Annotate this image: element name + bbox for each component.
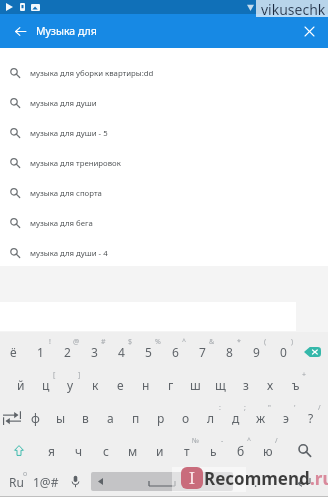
button[interactable]: т — [173, 434, 200, 467]
button[interactable]: музыка для бега — [0, 208, 328, 238]
button[interactable]: ф — [23, 401, 48, 434]
button[interactable]: музыка для уборки квартиры:dd — [0, 58, 328, 88]
button[interactable]: . — [233, 467, 279, 496]
staticText: I — [189, 467, 195, 489]
button[interactable]: и — [146, 434, 173, 467]
staticText: ж — [256, 410, 266, 426]
button[interactable]: е — [108, 368, 133, 401]
staticText: ё — [10, 344, 17, 360]
staticText: № — [192, 436, 200, 446]
button[interactable]: р — [148, 401, 173, 434]
button[interactable]: ъ — [283, 368, 308, 401]
button[interactable]: ? — [298, 401, 323, 434]
button[interactable]: с — [92, 434, 119, 467]
staticText: 0 — [280, 344, 287, 360]
button[interactable]: Enter — [279, 467, 328, 496]
button[interactable]: у — [58, 368, 83, 401]
staticText: vikusechk — [261, 0, 326, 17]
button[interactable]: э — [273, 401, 298, 434]
button[interactable]: Shift — [0, 434, 38, 467]
button[interactable]: я — [38, 434, 65, 467]
button[interactable]: Search — [281, 434, 328, 467]
staticText: Recommend — [204, 467, 310, 489]
button[interactable]: ь — [200, 434, 227, 467]
button[interactable]: музыка для души - 5 — [0, 118, 328, 148]
staticText: ? — [308, 410, 314, 426]
button[interactable]: й — [8, 368, 33, 401]
staticText: музыка для души - 4 — [30, 248, 108, 259]
button[interactable]: н — [133, 368, 158, 401]
staticText: 7 — [199, 344, 206, 360]
button[interactable]: щ — [208, 368, 233, 401]
staticText: музыка для бега — [30, 218, 93, 229]
button[interactable]: д — [223, 401, 248, 434]
button[interactable]: ё — [0, 335, 27, 368]
button[interactable]: Tab — [0, 401, 23, 434]
staticText: Музыка для — [36, 24, 97, 38]
staticText: з — [243, 377, 249, 393]
button[interactable]: Space — [91, 472, 233, 491]
button[interactable]: 1@# — [32, 467, 59, 496]
staticText: ю — [263, 443, 273, 459]
staticText: .ru — [310, 467, 328, 489]
button[interactable]: Voice input — [59, 467, 91, 496]
button[interactable]: ш — [183, 368, 208, 401]
button[interactable]: ц — [33, 368, 58, 401]
button[interactable]: ч — [65, 434, 92, 467]
button[interactable]: музыка для спорта — [0, 178, 328, 208]
staticText: ц — [42, 377, 50, 393]
staticText: 1@# — [33, 474, 59, 490]
button[interactable]: музыка для души — [0, 88, 328, 118]
button[interactable]: музыка для тренировок — [0, 148, 328, 178]
button[interactable]: 1 — [27, 335, 54, 368]
staticText: ь — [210, 443, 217, 459]
staticText: е — [117, 377, 124, 393]
staticText: музыка для тренировок — [30, 158, 121, 169]
staticText: + — [302, 370, 307, 380]
button[interactable]: ю — [254, 434, 281, 467]
staticText: н — [142, 377, 150, 393]
staticText: ^ — [247, 436, 252, 446]
button[interactable]: г — [158, 368, 183, 401]
button[interactable]: м — [119, 434, 146, 467]
staticText: музыка для спорта — [30, 188, 102, 199]
button[interactable]: б — [227, 434, 254, 467]
button[interactable]: о — [173, 401, 198, 434]
staticText: в — [82, 410, 89, 426]
button[interactable]: 6 — [162, 335, 189, 368]
button[interactable]: ы — [48, 401, 73, 434]
staticText: о — [23, 469, 28, 479]
staticText: р — [157, 410, 165, 426]
button[interactable]: 0 — [270, 335, 297, 368]
button[interactable]: Back — [8, 19, 32, 43]
button[interactable]: к — [83, 368, 108, 401]
staticText: 5 — [145, 344, 152, 360]
staticText: музыка для души - 5 — [30, 128, 108, 139]
button[interactable]: л — [198, 401, 223, 434]
staticText: ы — [56, 410, 66, 426]
button[interactable]: 5 — [135, 335, 162, 368]
staticText: ( — [264, 337, 267, 347]
staticText: % — [155, 337, 161, 347]
button[interactable]: музыка для души - 4 — [0, 238, 328, 268]
staticText: 2 — [64, 344, 71, 360]
button[interactable]: 7 — [189, 335, 216, 368]
button[interactable]: в — [73, 401, 98, 434]
button[interactable]: 4 — [108, 335, 135, 368]
staticText: ш — [190, 377, 201, 393]
button[interactable]: ж — [248, 401, 273, 434]
staticText: т — [184, 443, 190, 459]
button[interactable]: п — [123, 401, 148, 434]
button[interactable]: Ru — [0, 467, 32, 496]
button[interactable]: 8 — [216, 335, 243, 368]
button[interactable]: а — [98, 401, 123, 434]
button[interactable]: х — [258, 368, 283, 401]
button[interactable]: 9 — [243, 335, 270, 368]
button[interactable]: 2 — [54, 335, 81, 368]
button[interactable]: Clear search — [297, 19, 321, 43]
button[interactable]: 3 — [81, 335, 108, 368]
button[interactable]: з — [233, 368, 258, 401]
staticText: . — [254, 474, 258, 490]
staticText: у — [67, 377, 74, 393]
button[interactable]: Backspace — [297, 335, 328, 368]
